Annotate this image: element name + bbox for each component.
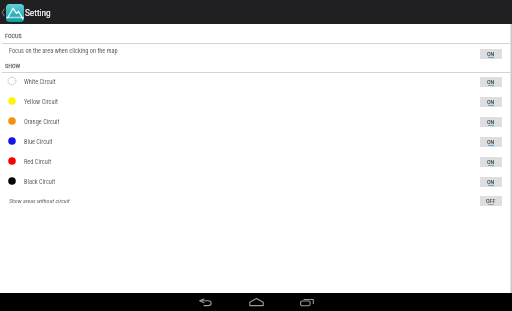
button[interactable]: Black Circuit (0, 171, 512, 191)
button[interactable]: Home (241, 293, 271, 311)
button[interactable]: Show areas without circuit (0, 191, 512, 211)
staticText: ON (487, 50, 495, 57)
staticText: ON (487, 138, 495, 145)
button[interactable]: Navigate up - Setting (0, 0, 512, 24)
staticText: ON (487, 178, 495, 185)
staticText: SHOW (5, 62, 21, 69)
button[interactable]: Recent apps (292, 293, 322, 311)
button[interactable]: Focus on the area when clicking on the m… (0, 44, 512, 62)
staticText: Orange Circuit (24, 118, 60, 125)
button[interactable]: On (480, 97, 502, 107)
button[interactable]: Off (480, 196, 502, 206)
staticText: Blue Circuit (24, 138, 53, 145)
staticText: ON (487, 158, 495, 165)
button[interactable]: Orange Circuit (0, 111, 512, 131)
staticText: Black Circuit (24, 178, 56, 185)
button[interactable]: On (480, 117, 502, 127)
button[interactable]: On (480, 49, 502, 59)
button[interactable]: Blue Circuit (0, 131, 512, 151)
button[interactable]: Yellow Circuit (0, 91, 512, 111)
staticText: White Circuit (24, 78, 56, 85)
button[interactable]: On (480, 157, 502, 167)
button[interactable]: Back (190, 293, 220, 311)
staticText: ON (487, 98, 495, 105)
staticText: ON (487, 118, 495, 125)
staticText: OFF (486, 197, 496, 204)
staticText: ON (487, 78, 495, 85)
button[interactable]: On (480, 137, 502, 147)
staticText: Setting (25, 8, 51, 18)
staticText: Focus on the area when clicking on the m… (9, 47, 118, 54)
staticText: FOCUS (5, 32, 22, 39)
staticText: Red Circuit (24, 158, 51, 165)
button[interactable]: On (480, 177, 502, 187)
button[interactable]: White Circuit (0, 71, 512, 91)
button[interactable]: Red Circuit (0, 151, 512, 171)
button[interactable]: On (480, 77, 502, 87)
staticText: Yellow Circuit (24, 98, 58, 105)
staticText: Show areas without circuit (9, 197, 70, 204)
